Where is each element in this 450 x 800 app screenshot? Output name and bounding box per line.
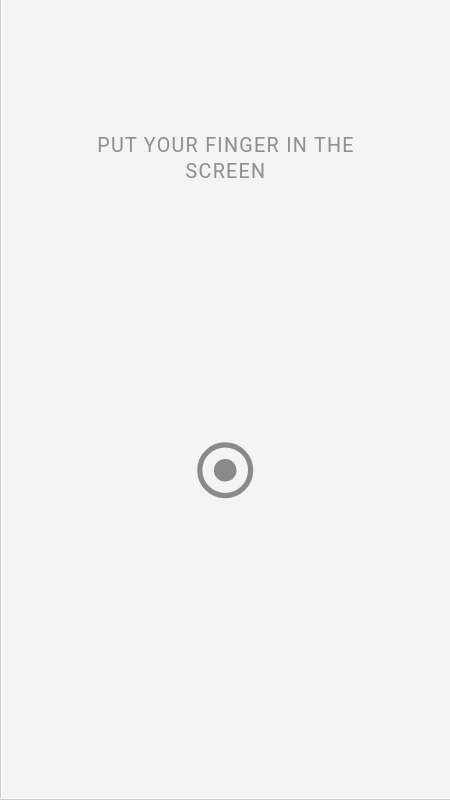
staticText: PUT YOUR FINGER IN THE SCREEN	[72, 134, 380, 183]
button[interactable]: Scan fingerprint	[197, 442, 253, 498]
